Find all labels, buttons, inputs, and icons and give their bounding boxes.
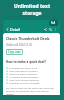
button[interactable]: Copy code <box>6 49 23 55</box>
staticText: The page will open a list <box>9 66 38 69</box>
staticText: Copy code <box>8 50 21 54</box>
staticText: Detail <box>10 27 21 32</box>
staticText: Wait until upload finished <box>9 78 40 81</box>
button[interactable]: Search <box>48 27 53 32</box>
button[interactable]: More options <box>53 27 58 32</box>
button[interactable]: Back <box>5 27 10 32</box>
staticText: Click the option to select <box>9 69 38 72</box>
staticText: Verify all items checked <box>9 72 37 75</box>
staticText: How to make a quick deal? <box>6 60 46 64</box>
staticText: Tip: each code can be used only once per… <box>6 86 57 95</box>
staticText: Payment is then complete <box>9 81 40 84</box>
staticText: Valid until 2024.12.30 <box>6 43 32 47</box>
button[interactable]: Share <box>43 27 48 32</box>
staticText: Unlimited text storage <box>4 3 60 16</box>
staticText: A confirm dialog appears <box>9 75 39 78</box>
staticText: Full <box>51 21 56 25</box>
staticText: Classic Thunderbolt Deals <box>6 36 50 41</box>
button[interactable]: Full <box>49 20 58 26</box>
